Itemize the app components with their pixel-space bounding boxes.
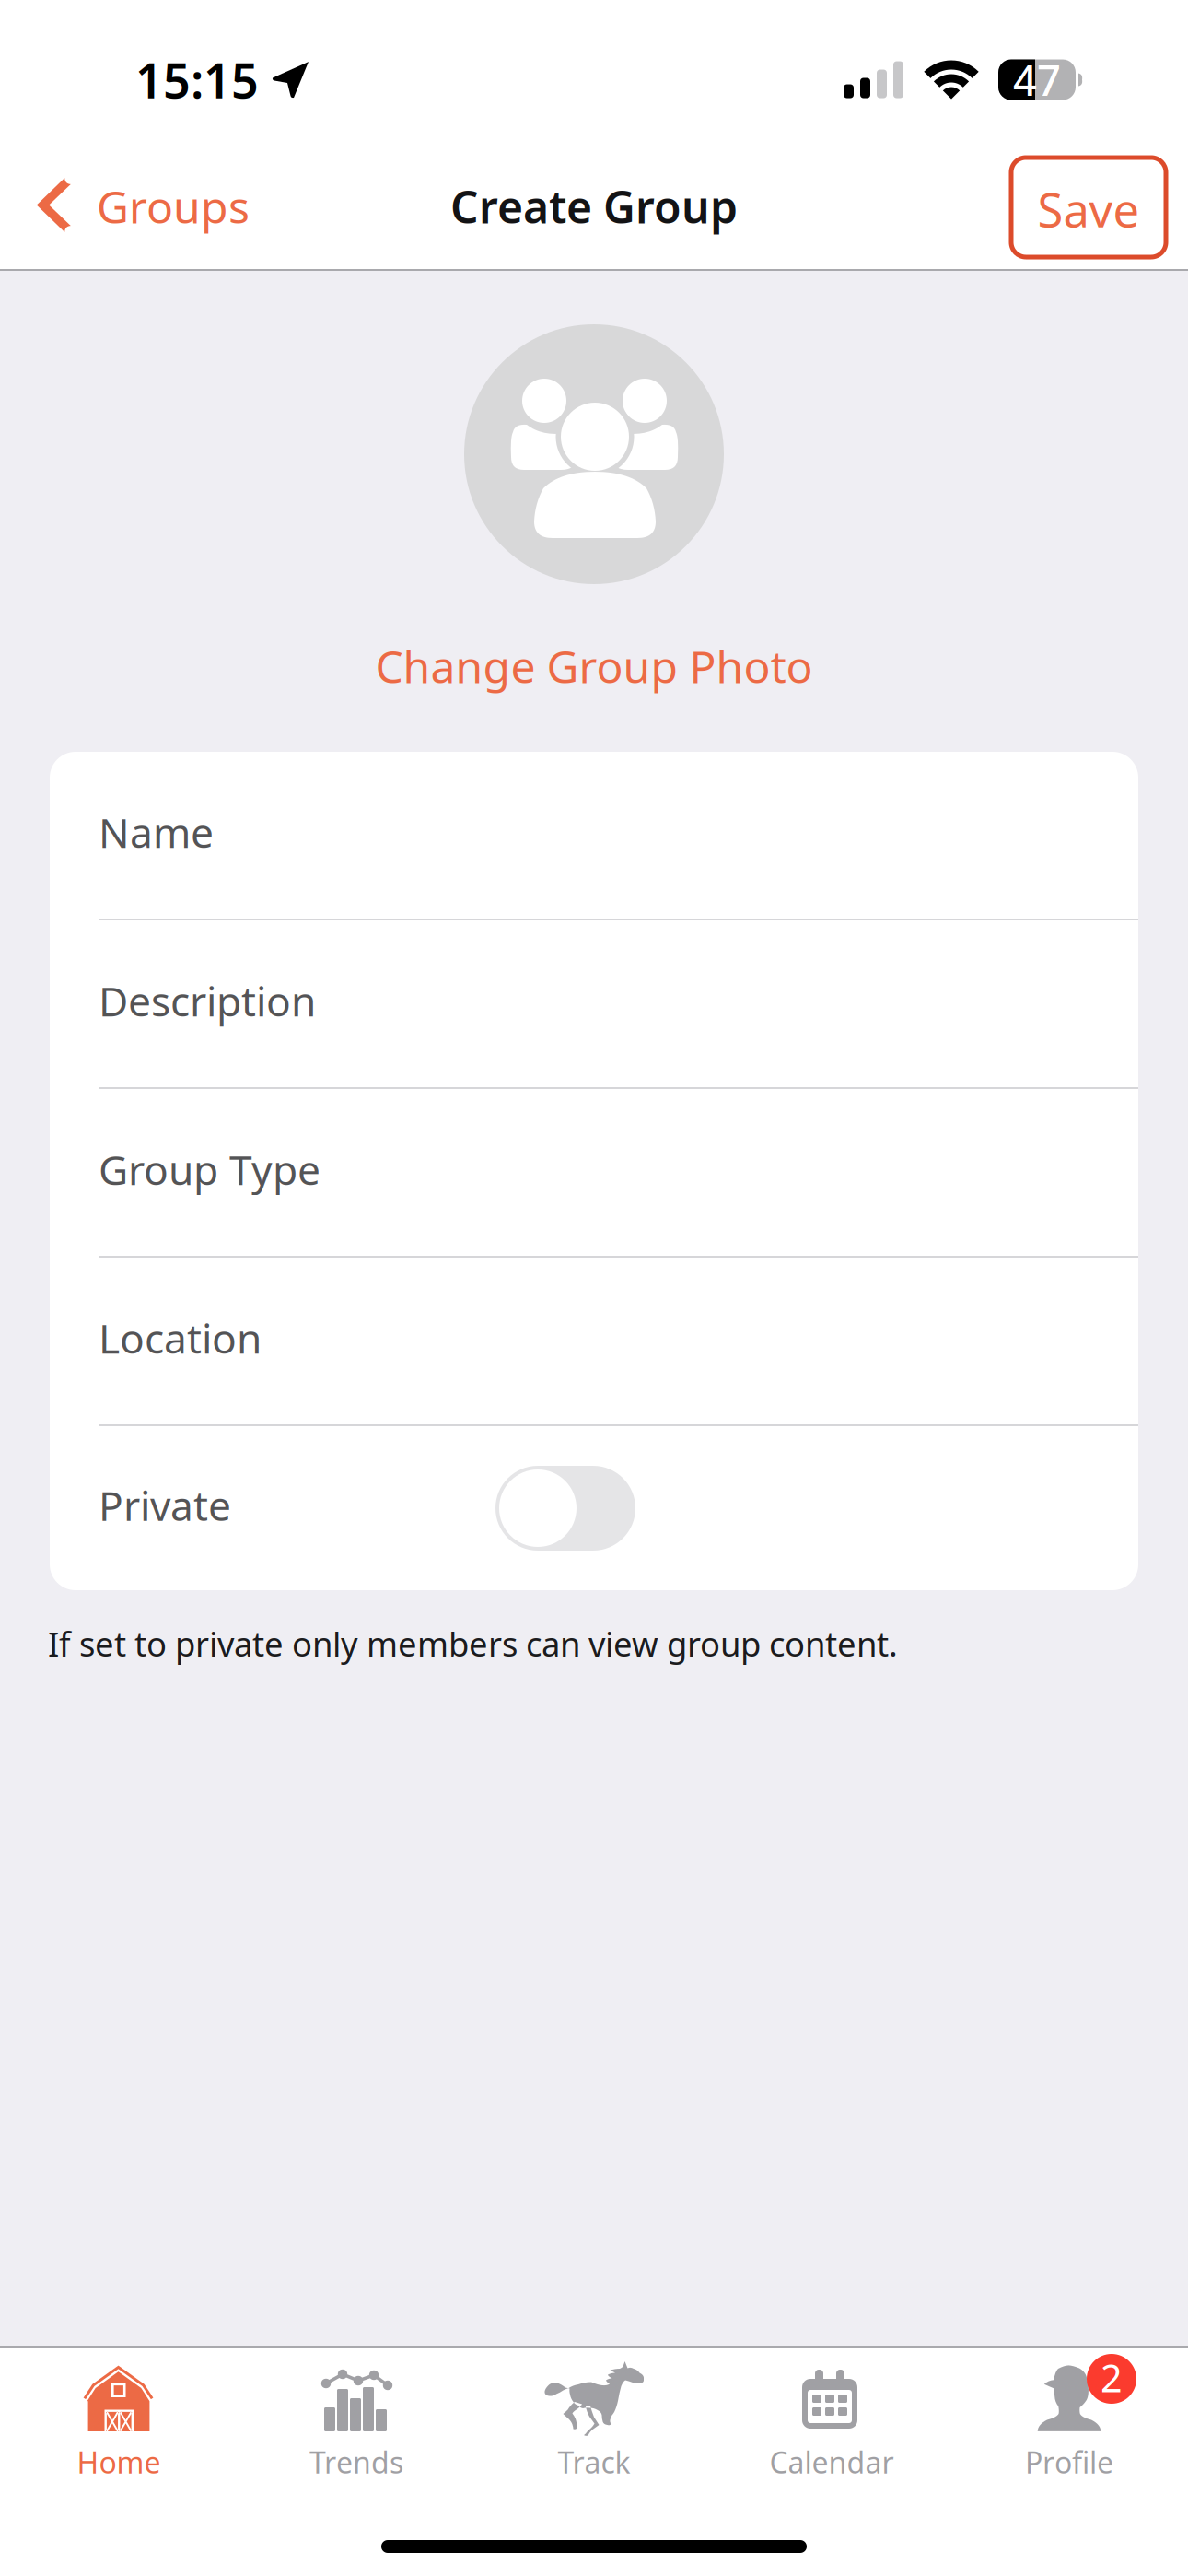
staticText: 2 bbox=[1101, 2352, 1123, 2403]
button[interactable]: Location bbox=[50, 1258, 1138, 1424]
staticText: Track bbox=[558, 2442, 630, 2482]
button[interactable]: Private bbox=[495, 1466, 635, 1551]
staticText: Trends bbox=[309, 2442, 403, 2482]
button[interactable]: Home bbox=[0, 2364, 238, 2486]
staticText: 15:15 bbox=[135, 48, 259, 112]
staticText: Group Type bbox=[99, 1141, 320, 1197]
button[interactable]: Track bbox=[475, 2364, 713, 2486]
staticText: Private bbox=[99, 1477, 231, 1533]
staticText: If set to private only members can view … bbox=[48, 1621, 898, 1666]
staticText: Create Group bbox=[450, 177, 738, 236]
staticText: Calendar bbox=[769, 2442, 894, 2482]
button[interactable]: 2 bbox=[950, 2364, 1188, 2486]
button[interactable]: Group Type bbox=[50, 1089, 1138, 1256]
staticText: Name bbox=[99, 804, 214, 860]
button[interactable]: Save bbox=[1011, 150, 1188, 257]
staticText: Groups bbox=[97, 177, 250, 236]
button[interactable]: Change Group Photo bbox=[375, 637, 813, 696]
button[interactable]: Trends bbox=[238, 2364, 475, 2486]
button[interactable]: Name bbox=[50, 752, 1138, 919]
staticText: Description bbox=[99, 973, 316, 1028]
staticText: Change Group Photo bbox=[375, 637, 813, 695]
staticText: Home bbox=[77, 2442, 161, 2482]
staticText: 47 bbox=[1013, 52, 1061, 107]
button[interactable]: Groups bbox=[0, 136, 268, 271]
staticText: Location bbox=[99, 1310, 262, 1366]
button[interactable]: Calendar bbox=[713, 2364, 950, 2486]
button[interactable]: Description bbox=[50, 920, 1138, 1087]
staticText: Save bbox=[1037, 178, 1140, 240]
staticText: Profile bbox=[1025, 2442, 1113, 2482]
